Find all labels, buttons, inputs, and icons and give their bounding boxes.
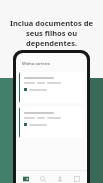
button[interactable]: Mais bbox=[70, 172, 84, 183]
staticText: Inclua documentos de seus filhos ou depe… bbox=[8, 18, 95, 48]
button[interactable]: Perfil bbox=[53, 172, 67, 183]
button[interactable] bbox=[19, 72, 84, 103]
staticText: Minha carteira bbox=[22, 61, 50, 66]
button[interactable]: Carteira bbox=[19, 172, 33, 183]
button[interactable] bbox=[19, 107, 84, 138]
button[interactable]: Buscar bbox=[36, 172, 50, 183]
